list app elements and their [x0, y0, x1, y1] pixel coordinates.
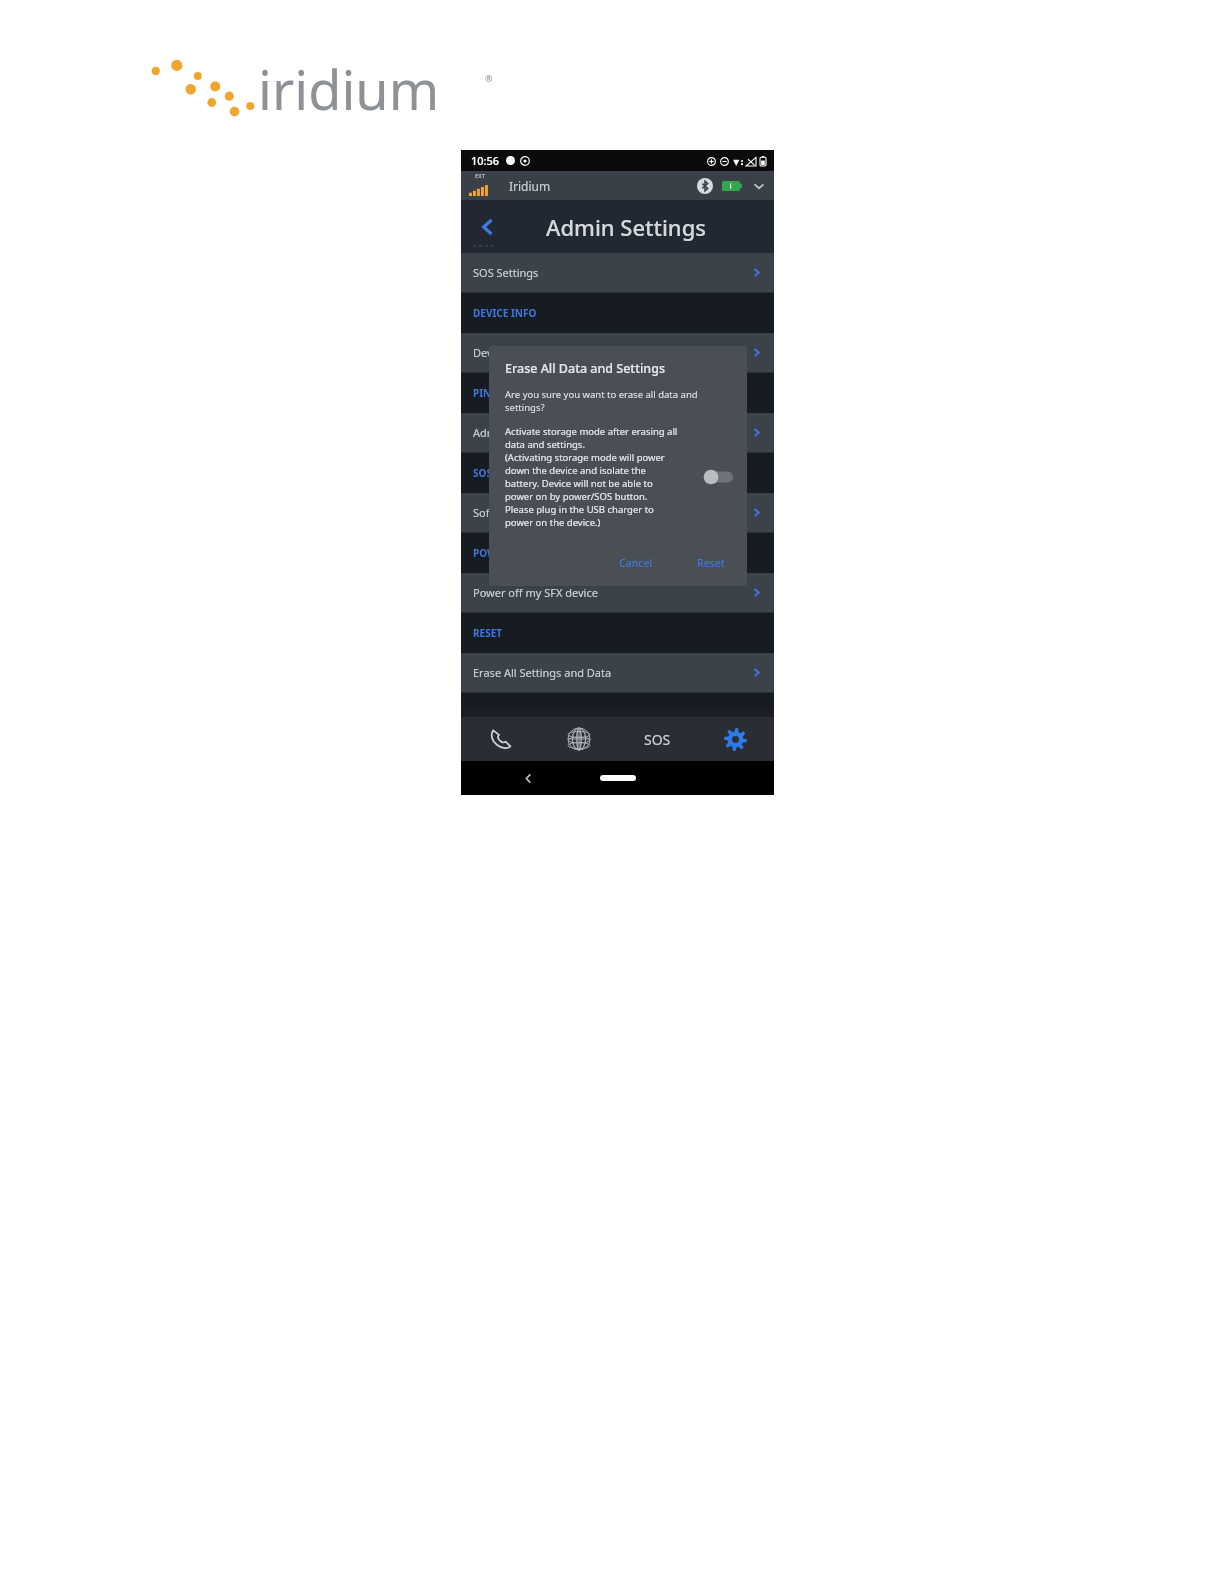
button[interactable]: Software SOS: [461, 493, 774, 532]
staticText: 10:56: [471, 153, 500, 168]
staticText: ®: [485, 72, 493, 84]
button[interactable]: Power off my SFX device: [461, 573, 774, 612]
staticText: Software SOS: [473, 505, 543, 520]
staticText: Are you sure you want to erase all data …: [505, 388, 698, 414]
staticText: Device Information: [473, 345, 573, 360]
staticText: Iridium: [509, 178, 551, 194]
staticText: DEVICE INFO: [473, 306, 537, 320]
staticText: PIN: [473, 386, 492, 400]
staticText: Erase All Settings and Data: [473, 665, 612, 680]
staticText: Admin PIN: [473, 425, 529, 440]
button[interactable]: SOS: [618, 717, 696, 761]
button[interactable]: Storage mode toggle: [703, 469, 733, 485]
button[interactable]: Call: [461, 717, 540, 761]
button[interactable]: Device Information: [461, 333, 774, 372]
button[interactable]: Erase All Settings and Data: [461, 653, 774, 692]
staticText: Power off my SFX device: [473, 585, 598, 600]
staticText: iridium: [258, 52, 440, 122]
button[interactable]: Home: [600, 775, 636, 781]
staticText: RESET: [473, 626, 503, 640]
staticText: Erase All Data and Settings: [505, 360, 665, 377]
button[interactable]: Back: [471, 210, 505, 244]
staticText: POWER: [473, 546, 509, 560]
staticText: SOS: [473, 466, 492, 480]
button[interactable]: Back: [517, 767, 539, 789]
staticText: EXT: [475, 172, 486, 180]
button[interactable]: Settings: [696, 717, 774, 761]
staticText: Activate storage mode after erasing all …: [505, 425, 697, 529]
button[interactable]: Admin PIN: [461, 413, 774, 452]
staticText: Admin Settings: [546, 212, 706, 242]
button[interactable]: SOS Settings: [461, 253, 774, 292]
button[interactable]: Cancel: [611, 552, 661, 574]
staticText: SOS: [644, 730, 671, 749]
staticText: Reset: [697, 556, 725, 570]
button[interactable]: Reset: [689, 552, 733, 574]
button[interactable]: Globe: [540, 717, 618, 761]
staticText: SOS Settings: [473, 265, 539, 280]
staticText: Cancel: [619, 556, 653, 570]
other: Expand: [752, 179, 766, 193]
